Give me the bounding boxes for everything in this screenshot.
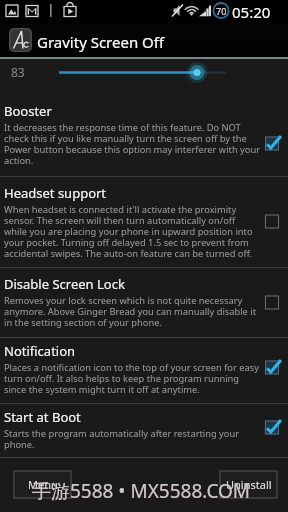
button[interactable]: Uninstall [220, 471, 277, 498]
button[interactable]: Gravity Screen Off [0, 24, 288, 57]
staticText: Gravity Screen Off [37, 32, 165, 52]
staticText: Disable Screen Lock [4, 275, 125, 293]
button[interactable]: Start at Boot [0, 404, 288, 457]
staticText: Menu [28, 477, 58, 492]
button[interactable]: Headset support [0, 177, 288, 267]
button[interactable]: Disable Screen Lock [0, 268, 288, 337]
staticText: It decreases the response time of this f… [4, 121, 260, 167]
staticText: Start at Boot [4, 408, 81, 426]
button[interactable]: 83 [0, 59, 288, 95]
staticText: Places a notification icon to the top of… [4, 361, 260, 396]
button[interactable]: Notification [0, 338, 288, 403]
staticText: When headset is connected it'll activate… [4, 203, 260, 260]
staticText: Headset support [4, 184, 107, 202]
staticText: 70 [216, 5, 227, 17]
staticText: Booster [4, 102, 52, 120]
button[interactable]: Booster [0, 95, 288, 176]
staticText: Notification [4, 342, 76, 360]
staticText: Uninstall [226, 477, 272, 492]
staticText: 05:20 [232, 2, 271, 22]
staticText: 手游5588 • MX5588.COM [0, 478, 285, 504]
button[interactable]: Menu [14, 471, 71, 498]
staticText: Removes your lock screen which is not qu… [4, 294, 260, 329]
staticText: Starts the program automatically after r… [4, 427, 260, 451]
staticText: 83 [11, 64, 25, 80]
